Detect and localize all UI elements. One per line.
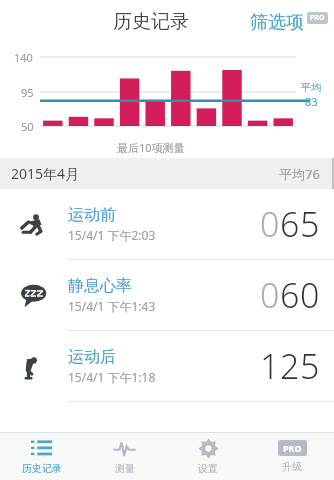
staticText: 2015年4月 [11, 164, 80, 183]
staticText: 95 [21, 85, 34, 100]
staticText: 设置 [198, 462, 218, 475]
staticText: 6 [280, 272, 300, 318]
button[interactable]: 历史记录 [0, 433, 83, 480]
staticText: 测量 [115, 462, 135, 475]
staticText: 15/4/1 下午1:43 [68, 298, 156, 314]
staticText: 平均 [301, 81, 321, 94]
staticText: 筛选项 [250, 11, 304, 34]
button[interactable]: 测量 [83, 433, 166, 480]
button[interactable]: 运动前 [0, 189, 334, 259]
staticText: 历史记录 [22, 462, 62, 475]
staticText: 1 [260, 343, 280, 389]
staticText: 平均76 [279, 165, 320, 183]
staticText: 50 [21, 119, 34, 134]
staticText: 0 [260, 272, 280, 318]
staticText: 5 [300, 201, 320, 247]
button[interactable]: 筛选项 [250, 11, 328, 34]
staticText: 140 [14, 50, 33, 65]
staticText: 0 [260, 201, 280, 247]
staticText: 历史记录 [113, 10, 189, 34]
staticText: 0 [300, 272, 320, 318]
staticText: 升级 [282, 460, 302, 473]
staticText: 5 [300, 343, 320, 389]
staticText: 最后10项测量 [117, 140, 185, 155]
staticText: 运动前 [68, 205, 116, 225]
staticText: 15/4/1 下午1:18 [68, 369, 156, 385]
staticText: 6 [280, 201, 300, 247]
button[interactable]: 设置 [166, 433, 250, 480]
staticText: 运动后 [68, 347, 116, 367]
staticText: 83 [305, 94, 318, 109]
staticText: PRO [283, 442, 302, 454]
button[interactable]: 静息心率 [0, 260, 334, 330]
staticText: 15/4/1 下午2:03 [68, 227, 156, 243]
button[interactable]: PRO [250, 433, 334, 480]
staticText: PRO [310, 13, 325, 23]
staticText: 静息心率 [68, 276, 132, 296]
staticText: 2 [280, 343, 300, 389]
button[interactable]: 运动后 [0, 331, 334, 401]
